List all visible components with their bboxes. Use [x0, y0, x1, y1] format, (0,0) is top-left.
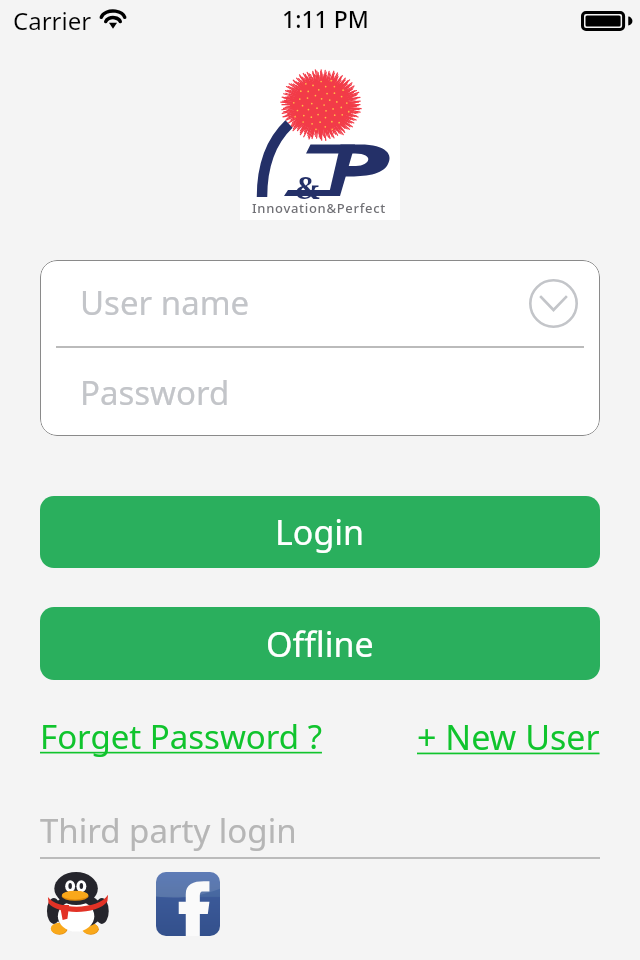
button[interactable]: Login with Facebook [156, 872, 220, 936]
button[interactable]: Password [40, 348, 600, 436]
staticText: User name [80, 280, 250, 325]
button[interactable]: Forget Password ? [40, 714, 322, 759]
staticText: Password [80, 370, 230, 415]
staticText: 1:11 PM [282, 3, 369, 34]
staticText: Offline [266, 621, 374, 667]
staticText: Login [275, 509, 365, 555]
button[interactable]: + New User [417, 714, 600, 760]
staticText: Forget Password ? [40, 714, 322, 759]
button[interactable]: User name [40, 260, 600, 346]
staticText: Carrier [13, 4, 92, 37]
button[interactable]: Offline [40, 607, 600, 680]
staticText: Third party login [40, 808, 297, 853]
staticText: + New User [417, 714, 600, 760]
staticText: Innovation&Perfect [252, 199, 386, 217]
button[interactable]: Login [40, 496, 600, 568]
staticText: & [295, 166, 320, 208]
button[interactable]: Login with QQ [46, 870, 110, 940]
button[interactable]: Show saved accounts [528, 278, 579, 329]
